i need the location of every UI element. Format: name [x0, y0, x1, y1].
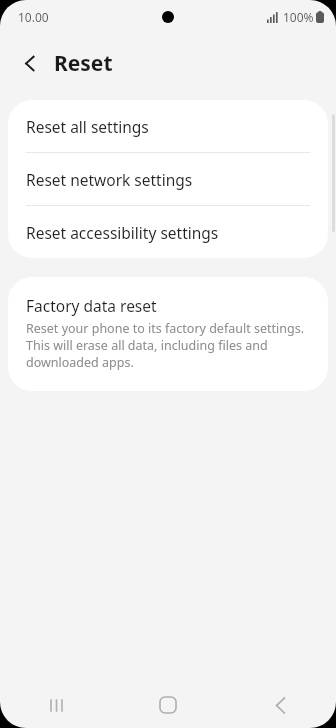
staticText: Reset accessibility settings [26, 222, 219, 243]
staticText: Factory data reset [26, 295, 157, 316]
button[interactable]: Home [112, 682, 224, 728]
staticText: 100% [283, 9, 314, 25]
button[interactable]: Factory data reset [8, 277, 328, 391]
button[interactable]: Reset accessibility settings [8, 206, 328, 258]
staticText: Reset all settings [26, 116, 149, 137]
staticText: Reset network settings [26, 169, 193, 190]
button[interactable]: Back [224, 682, 336, 728]
staticText: Reset your phone to its factory default … [26, 320, 308, 371]
button[interactable]: Recent apps [0, 682, 112, 728]
button[interactable]: Reset all settings [8, 100, 328, 152]
staticText: 10.00 [18, 9, 49, 25]
staticText: Reset [54, 49, 113, 78]
button[interactable]: Back [10, 43, 50, 83]
button[interactable]: Reset network settings [8, 153, 328, 205]
